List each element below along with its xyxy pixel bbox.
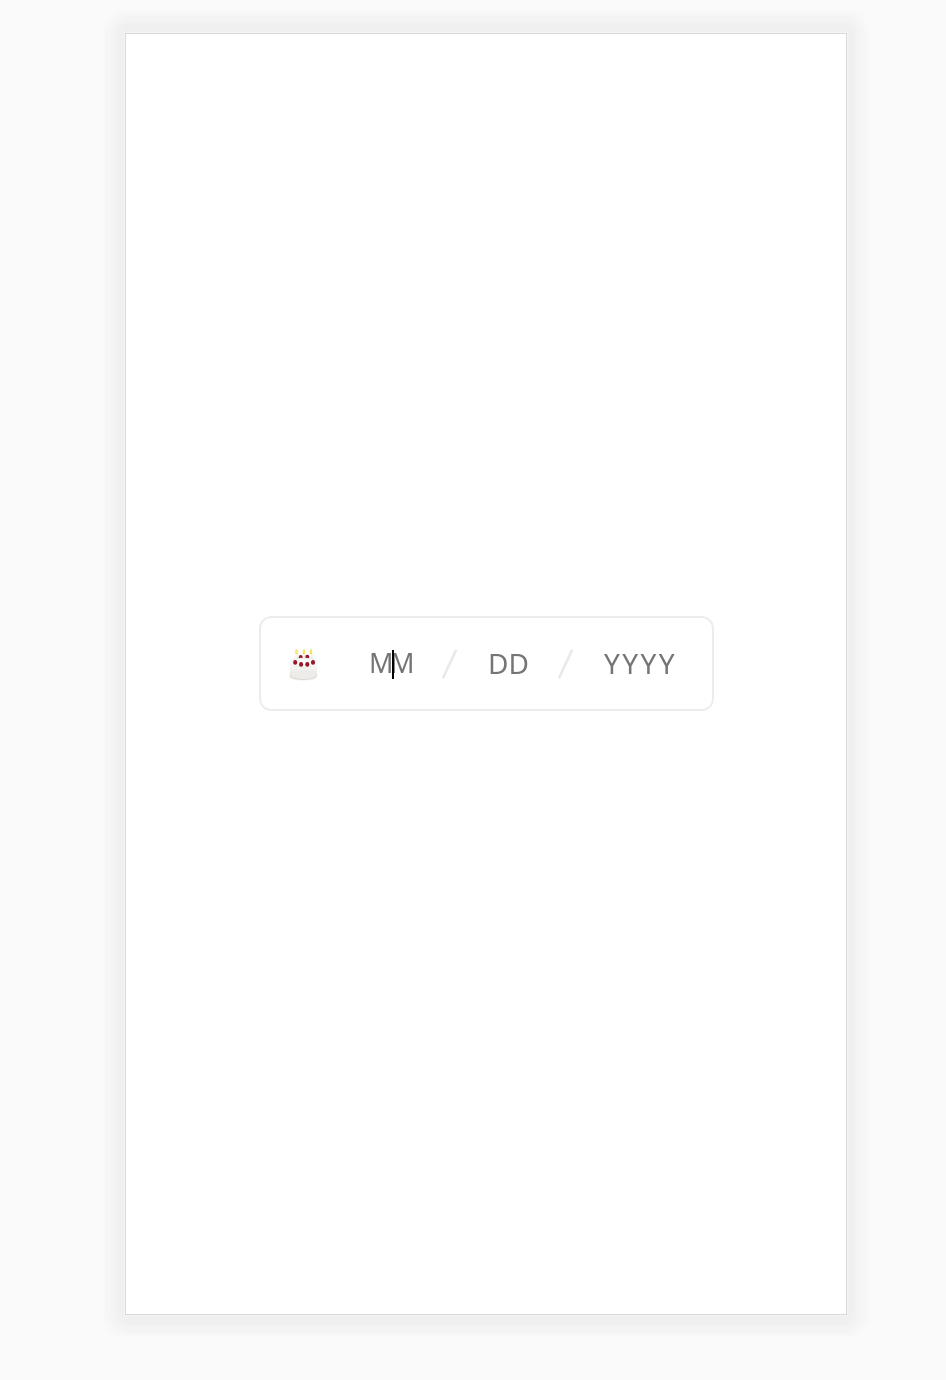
button[interactable]: Year <box>595 630 681 697</box>
other: Birthday <box>288 647 319 680</box>
staticText: DD <box>488 644 529 682</box>
button[interactable]: Day <box>479 630 535 697</box>
staticText: YYYY <box>604 644 677 682</box>
button[interactable]: Birthday <box>259 616 714 711</box>
button[interactable]: Month <box>359 630 419 697</box>
staticText: MM <box>369 644 411 681</box>
